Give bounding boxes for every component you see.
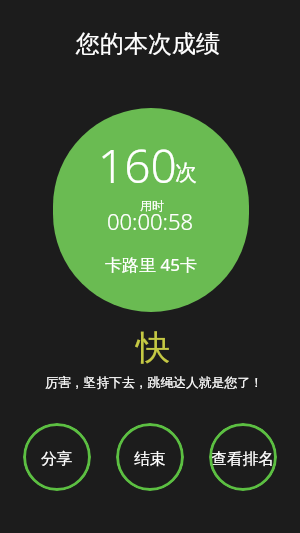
staticText: 00:00:58 <box>0 206 300 236</box>
button[interactable]: 结束 <box>116 423 184 491</box>
staticText: 快 <box>3 326 300 369</box>
staticText: 次 <box>175 159 197 187</box>
staticText: 结束 <box>134 449 166 469</box>
button[interactable]: 分享 <box>23 423 91 491</box>
staticText: 160 <box>98 134 177 197</box>
staticText: 查看排名 <box>211 449 275 469</box>
staticText: 您的本次成绩 <box>0 29 298 59</box>
staticText: 用时 <box>2 198 300 213</box>
button[interactable]: 查看排名 <box>209 423 277 491</box>
staticText: 卡路里 45卡 <box>1 253 300 276</box>
staticText: 分享 <box>41 449 73 469</box>
staticText: 厉害，坚持下去，跳绳达人就是您了！ <box>4 375 300 391</box>
